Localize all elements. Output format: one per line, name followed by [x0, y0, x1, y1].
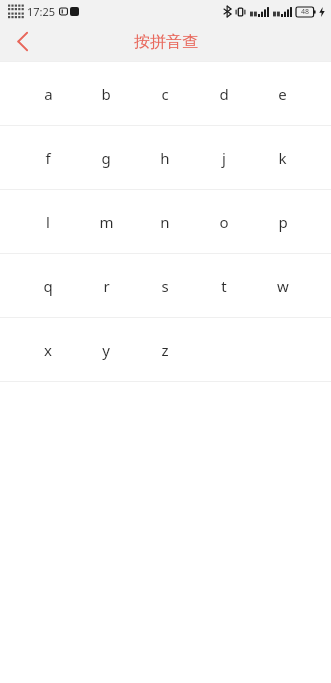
button[interactable]: a	[19, 62, 77, 125]
button[interactable]: e	[253, 62, 312, 125]
button[interactable]: b	[77, 62, 135, 125]
button[interactable]: j	[194, 126, 253, 189]
button[interactable]: r	[77, 254, 135, 317]
staticText: p	[278, 212, 288, 232]
button[interactable]: q	[19, 254, 77, 317]
staticText: e	[278, 84, 287, 104]
staticText: z	[161, 340, 169, 360]
button[interactable]: k	[253, 126, 312, 189]
staticText: j	[222, 148, 226, 168]
button[interactable]: w	[253, 254, 312, 317]
button[interactable]: c	[135, 62, 194, 125]
staticText: l	[46, 212, 50, 232]
staticText: k	[278, 148, 287, 168]
button[interactable]: m	[77, 190, 135, 253]
staticText: h	[160, 148, 170, 168]
button[interactable]: d	[194, 62, 253, 125]
staticText: y	[102, 340, 110, 360]
staticText: o	[219, 212, 229, 232]
button[interactable]: x	[19, 318, 77, 381]
staticText: w	[277, 276, 289, 296]
staticText: 48	[301, 7, 310, 17]
staticText: s	[161, 276, 169, 296]
staticText: a	[44, 84, 53, 104]
button[interactable]: s	[135, 254, 194, 317]
staticText: n	[160, 212, 170, 232]
button[interactable]: l	[19, 190, 77, 253]
staticText: m	[99, 212, 114, 232]
button[interactable]: o	[194, 190, 253, 253]
staticText: 按拼音查	[134, 32, 198, 52]
staticText: q	[43, 276, 53, 296]
button[interactable]: Back	[0, 22, 44, 61]
button[interactable]: p	[253, 190, 312, 253]
button[interactable]: f	[19, 126, 77, 189]
staticText: c	[161, 84, 169, 104]
staticText: r	[103, 276, 110, 296]
staticText: b	[101, 84, 111, 104]
button[interactable]: t	[194, 254, 253, 317]
button[interactable]: y	[77, 318, 135, 381]
staticText: g	[101, 148, 111, 168]
staticText: x	[44, 340, 52, 360]
staticText: t	[221, 276, 227, 296]
staticText: 17:25	[27, 4, 56, 19]
staticText: d	[219, 84, 229, 104]
button[interactable]: h	[135, 126, 194, 189]
staticText: f	[45, 148, 51, 168]
button[interactable]: g	[77, 126, 135, 189]
button[interactable]: z	[135, 318, 194, 381]
button[interactable]: n	[135, 190, 194, 253]
